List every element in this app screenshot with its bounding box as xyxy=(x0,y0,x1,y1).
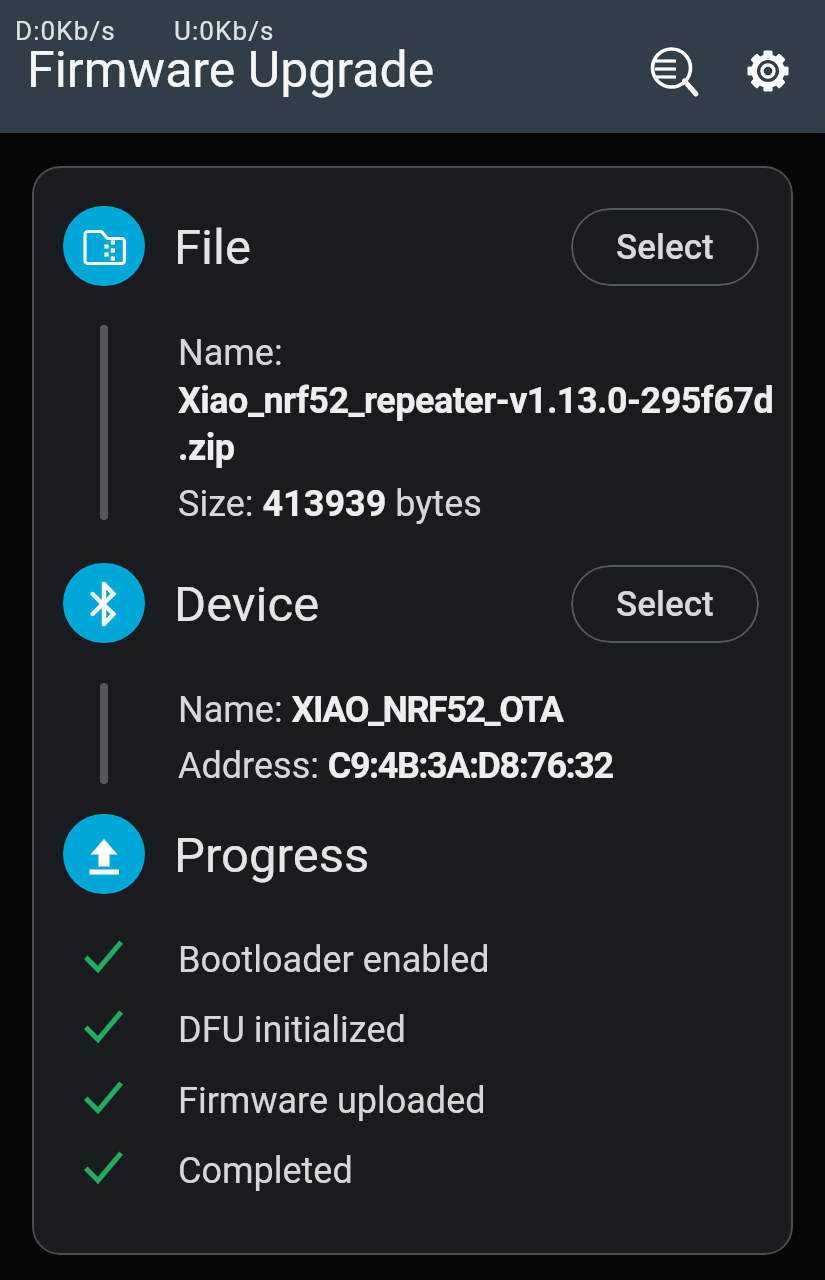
staticText: Bootloader enabled xyxy=(178,939,490,981)
staticText: Completed xyxy=(178,1150,353,1192)
button[interactable]: Select xyxy=(571,565,759,643)
button[interactable] xyxy=(637,36,705,104)
staticText: Address: C9:4B:3A:D8:76:32 xyxy=(178,745,613,787)
button[interactable] xyxy=(734,37,802,105)
staticText: .zip xyxy=(178,427,235,469)
staticText: Select xyxy=(616,227,714,268)
staticText: Progress xyxy=(174,827,370,884)
staticText: Name: XIAO_NRF52_OTA xyxy=(178,689,563,731)
staticText: Xiao_nrf52_repeater-v1.13.0-295f67d xyxy=(178,380,774,422)
staticText: U:0Kb/s xyxy=(174,16,275,46)
staticText: Size: 413939 bytes xyxy=(178,483,482,525)
staticText: Name: xyxy=(178,332,283,374)
staticText: Device xyxy=(174,576,320,633)
staticText: Firmware Upgrade xyxy=(27,41,435,100)
staticText: Select xyxy=(616,584,714,625)
staticText: D:0Kb/s xyxy=(15,16,116,46)
staticText: File xyxy=(174,219,251,276)
button[interactable]: Select xyxy=(571,208,759,286)
staticText: DFU initialized xyxy=(178,1009,406,1051)
staticText: Firmware uploaded xyxy=(178,1080,486,1122)
